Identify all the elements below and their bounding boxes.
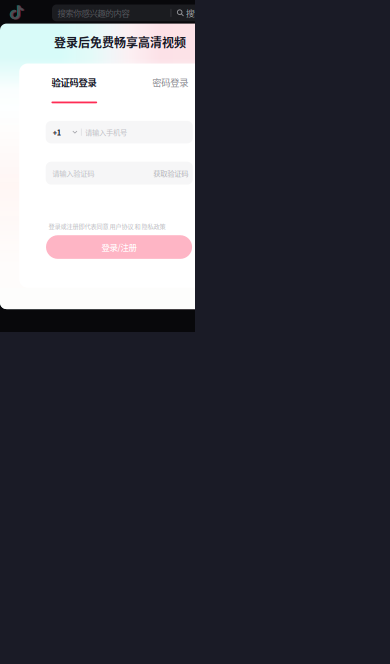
button[interactable]: 用户协议 — [110, 221, 134, 230]
staticText: 登录/注册 — [101, 241, 136, 253]
button[interactable]: 登录/注册 — [46, 235, 192, 259]
staticText: 搜索你感兴趣的内容 — [58, 7, 130, 19]
staticText: 搜索 — [186, 7, 202, 19]
staticText: 和 — [134, 221, 142, 230]
staticText: 请输入验证码 — [52, 168, 94, 178]
button[interactable]: 搜索你感兴趣的内容 — [52, 4, 207, 21]
staticText: 获取验证码 — [153, 168, 188, 178]
button[interactable]: 验证码登录 — [51, 77, 97, 101]
button[interactable]: 隐私政策 — [142, 221, 166, 230]
staticText: 用户协议 — [110, 221, 134, 230]
staticText: 请输入手机号 — [85, 127, 127, 137]
staticText: +1 — [53, 127, 61, 137]
staticText: 隐私政策 — [142, 221, 166, 230]
button[interactable]: 获取验证码 — [153, 168, 188, 178]
button[interactable]: 密码登录 — [152, 77, 189, 101]
staticText: 登录后免费畅享高清视频 — [54, 33, 186, 51]
button[interactable]: TikTok — [10, 5, 24, 20]
staticText: 密码登录 — [152, 75, 188, 89]
staticText: 验证码登录 — [51, 75, 96, 89]
staticText: 登录或注册即代表同意 — [49, 221, 110, 230]
